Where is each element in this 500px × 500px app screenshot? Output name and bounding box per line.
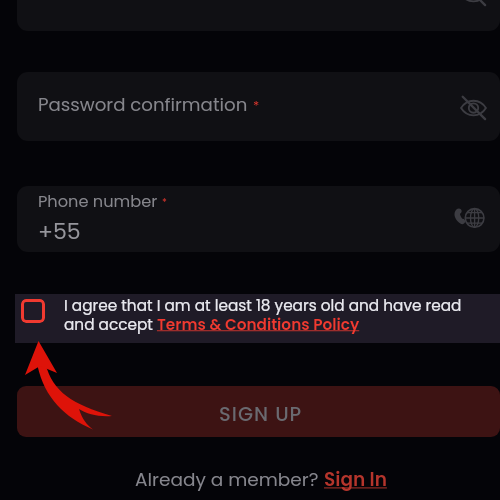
staticText: SIGN UP: [219, 401, 303, 428]
staticText: Password confirmation: [38, 92, 248, 117]
button[interactable]: Select country calling code: [452, 202, 486, 236]
button[interactable]: Phone number: [17, 186, 500, 252]
button[interactable]: Password confirmation: [17, 72, 500, 141]
staticText: +55: [38, 216, 81, 247]
staticText: Already a member?: [135, 467, 324, 493]
button[interactable]: I agree checkbox: [21, 299, 45, 323]
staticText: Sign In: [324, 467, 387, 493]
button[interactable]: Toggle password visibility: [460, 94, 487, 121]
staticText: *: [162, 195, 167, 209]
button[interactable]: I agree checkbox: [15, 294, 500, 343]
button[interactable]: Already a member?: [135, 467, 387, 493]
button[interactable]: Toggle password visibility: [460, 0, 487, 7]
staticText: *: [253, 96, 260, 114]
staticText: I agree that I am at least 18 years old …: [64, 295, 462, 335]
staticText: Phone number: [38, 190, 158, 213]
button[interactable]: SIGN UP: [17, 386, 500, 437]
